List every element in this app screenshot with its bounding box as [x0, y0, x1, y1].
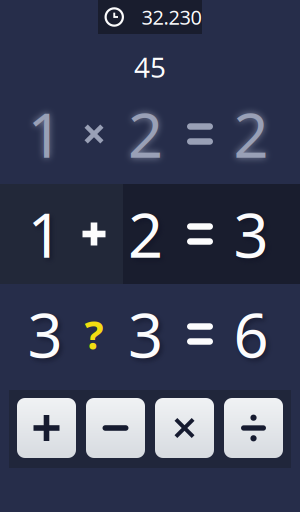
- button[interactable]: Divide: [224, 398, 283, 458]
- staticText: 45: [134, 48, 166, 86]
- button[interactable]: Multiply: [155, 398, 214, 458]
- staticText: 3: [27, 293, 62, 375]
- staticText: 2: [128, 93, 163, 175]
- staticText: 32.230: [141, 4, 201, 30]
- staticText: 3: [233, 193, 268, 275]
- staticText: 6: [233, 293, 268, 375]
- staticText: 3: [128, 293, 163, 375]
- staticText: ?: [84, 307, 103, 360]
- staticText: 2: [233, 93, 268, 175]
- button[interactable]: Plus: [17, 398, 76, 458]
- button[interactable]: Minus: [86, 398, 145, 458]
- staticText: 2: [128, 193, 163, 275]
- staticText: 1: [27, 93, 62, 175]
- staticText: 1: [27, 193, 62, 275]
